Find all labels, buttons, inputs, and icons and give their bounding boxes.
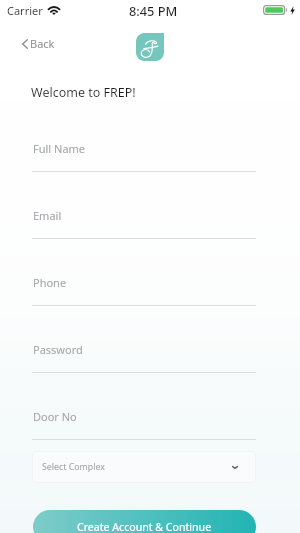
button[interactable]: Door No bbox=[32, 406, 256, 440]
staticText: Password bbox=[33, 342, 83, 357]
staticText: Select Complex bbox=[42, 461, 105, 473]
staticText: Carrier bbox=[7, 3, 43, 18]
staticText: Welcome to FREP! bbox=[31, 84, 136, 101]
button[interactable]: Full Name bbox=[32, 138, 256, 172]
button[interactable]: Email bbox=[32, 205, 256, 239]
button[interactable]: Create Account & Continue bbox=[33, 510, 256, 533]
staticText: Email bbox=[33, 208, 62, 223]
button[interactable]: Select Complex bbox=[32, 451, 256, 483]
staticText: Phone bbox=[33, 275, 67, 290]
staticText: Door No bbox=[33, 409, 77, 424]
staticText: 8:45 PM bbox=[129, 2, 178, 19]
staticText: Create Account & Continue bbox=[77, 520, 212, 533]
button[interactable]: Back bbox=[16, 32, 63, 55]
button[interactable]: Phone bbox=[32, 272, 256, 306]
button[interactable]: Password bbox=[32, 339, 256, 373]
staticText: Full Name bbox=[33, 141, 86, 156]
staticText: Back bbox=[30, 36, 55, 51]
button[interactable]: FREP logo bbox=[136, 33, 164, 61]
